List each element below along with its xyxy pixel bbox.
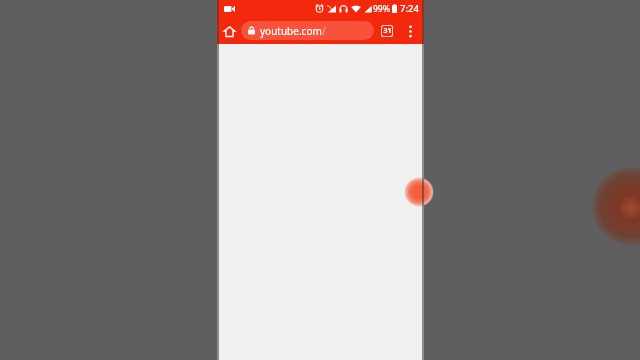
- staticText: /account_: [322, 24, 366, 38]
- button[interactable]: More options: [399, 20, 421, 42]
- button[interactable]: youtube.com: [241, 21, 374, 40]
- staticText: 7:24: [400, 2, 419, 15]
- button[interactable]: Home: [217, 19, 241, 43]
- staticText: youtube.com: [260, 24, 322, 38]
- button[interactable]: Switch tabs, 31 open: [376, 20, 398, 42]
- staticText: 99%: [373, 3, 390, 15]
- staticText: 31: [383, 26, 392, 36]
